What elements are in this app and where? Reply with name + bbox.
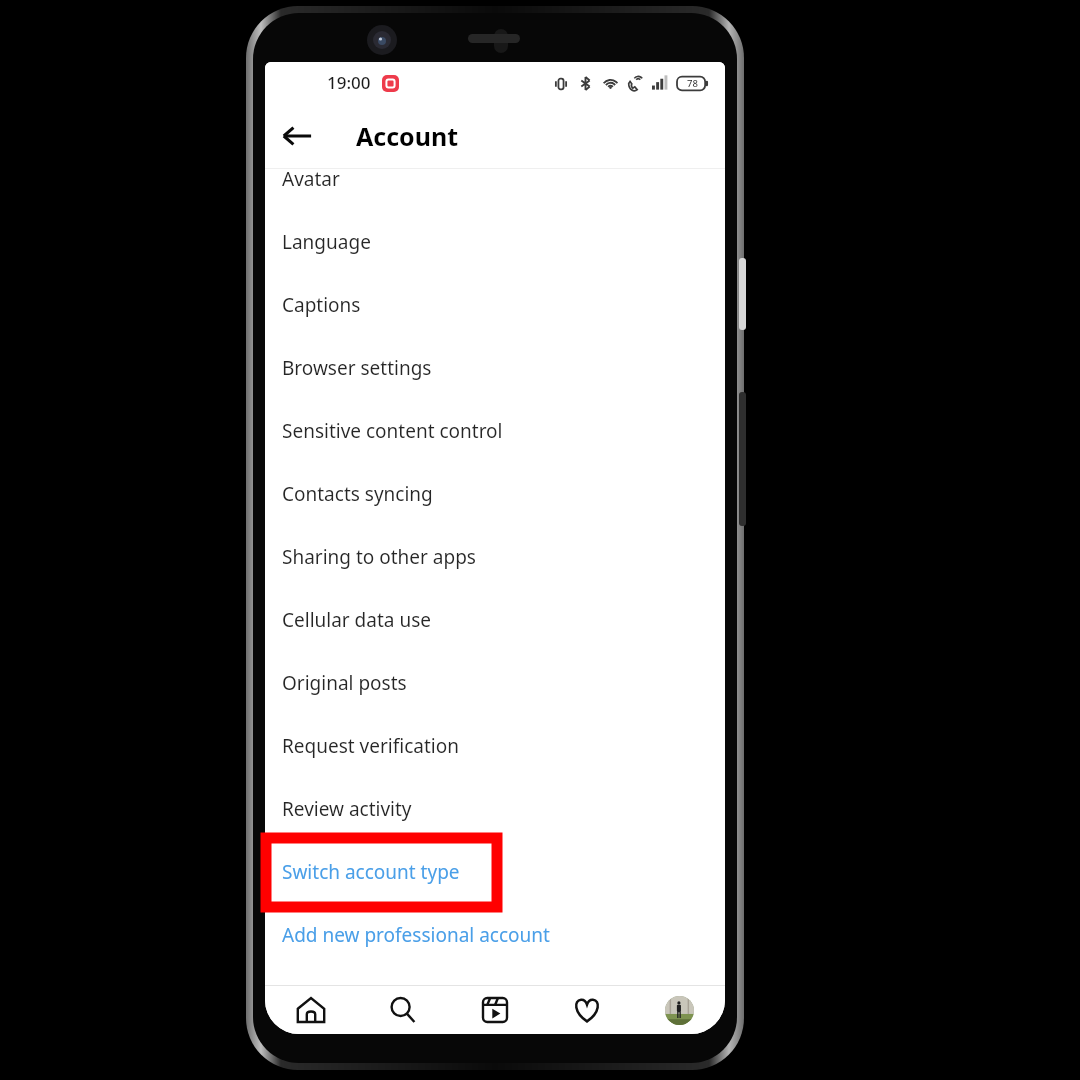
button[interactable]: Language <box>265 210 725 273</box>
button[interactable]: Activity <box>541 986 633 1034</box>
button[interactable]: Search <box>357 986 449 1034</box>
button[interactable]: Home <box>265 986 357 1034</box>
staticText: Add new professional account <box>282 922 550 948</box>
staticText: Language <box>282 229 371 255</box>
button[interactable]: Add new professional account <box>265 903 725 966</box>
button[interactable]: Cellular data use <box>265 588 725 651</box>
staticText: Sharing to other apps <box>282 544 476 570</box>
button[interactable]: Request verification <box>265 714 725 777</box>
staticText: Captions <box>282 292 361 318</box>
staticText: 19:00 <box>327 71 371 94</box>
button[interactable]: Original posts <box>265 651 725 714</box>
button[interactable]: Reels <box>449 986 541 1034</box>
staticText: Sensitive content control <box>282 418 503 444</box>
staticText: Avatar <box>282 166 340 192</box>
button[interactable]: Back <box>273 112 321 160</box>
button[interactable]: Avatar <box>265 147 725 210</box>
staticText: Account <box>356 119 459 153</box>
button[interactable]: Captions <box>265 273 725 336</box>
button[interactable]: Profile <box>633 986 725 1034</box>
button[interactable]: Browser settings <box>265 336 725 399</box>
staticText: Review activity <box>282 796 412 822</box>
staticText: Original posts <box>282 670 407 696</box>
staticText: Browser settings <box>282 355 432 381</box>
staticText: Switch account type <box>282 859 460 885</box>
button[interactable]: Sensitive content control <box>265 399 725 462</box>
staticText: Contacts syncing <box>282 481 433 507</box>
button[interactable]: Contacts syncing <box>265 462 725 525</box>
button[interactable]: Sharing to other apps <box>265 525 725 588</box>
staticText: Request verification <box>282 733 459 759</box>
button[interactable]: Review activity <box>265 777 725 840</box>
staticText: 78 <box>687 77 698 90</box>
button[interactable]: Switch account type <box>265 840 725 903</box>
staticText: Cellular data use <box>282 607 431 633</box>
